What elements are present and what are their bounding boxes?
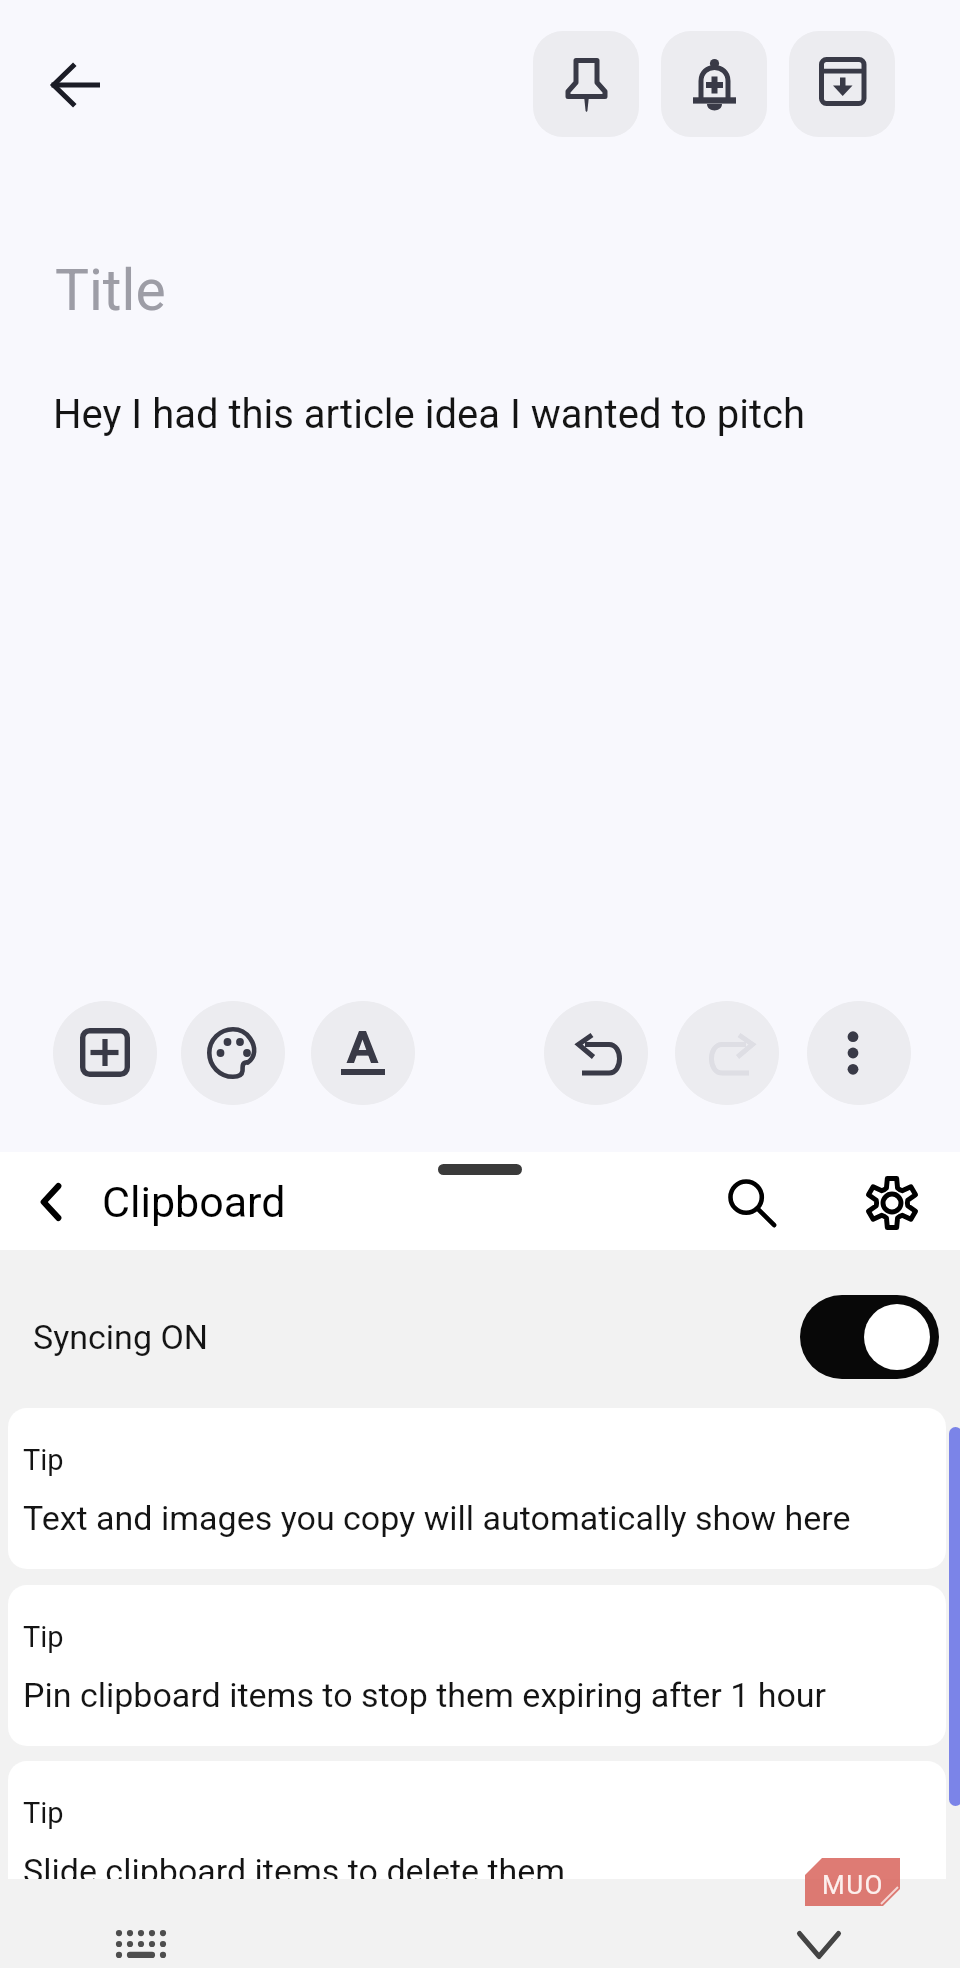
button[interactable]: Colour [181,1001,285,1105]
staticText: Pin clipboard items to stop them expirin… [23,1675,827,1715]
button[interactable]: Text format [311,1001,415,1105]
button[interactable]: Search [709,1160,793,1244]
button[interactable]: Tip [8,1761,946,1922]
button[interactable]: Syncing ON [0,1250,960,1408]
staticText: MUO [822,1870,884,1900]
button[interactable]: Collapse [777,1903,861,1968]
button[interactable]: Tip [8,1585,946,1746]
staticText: Tip [23,1443,64,1477]
staticText: Syncing ON [33,1317,209,1357]
button[interactable]: More options [807,1001,911,1105]
staticText: Clipboard [102,1177,286,1227]
button[interactable]: Keyboard [101,1921,181,1967]
button[interactable]: Redo [675,1001,779,1105]
button[interactable]: Back [15,1166,87,1238]
staticText: Title [55,257,166,324]
button[interactable]: Pin [533,31,639,137]
staticText: Text and images you copy will automatica… [23,1498,851,1538]
button[interactable]: Add reminder [661,31,767,137]
button[interactable]: Archive [789,31,895,137]
button[interactable]: Back [29,39,121,131]
button[interactable]: Settings [850,1161,934,1245]
button[interactable]: Undo [544,1001,648,1105]
staticText: Tip [23,1620,64,1654]
staticText: Hey I had this article idea I wanted to … [53,391,806,438]
staticText: Tip [23,1796,64,1830]
staticText: Slide clipboard items to delete them [23,1851,566,1891]
button[interactable]: Tip [8,1408,946,1569]
button[interactable]: Insert [53,1001,157,1105]
